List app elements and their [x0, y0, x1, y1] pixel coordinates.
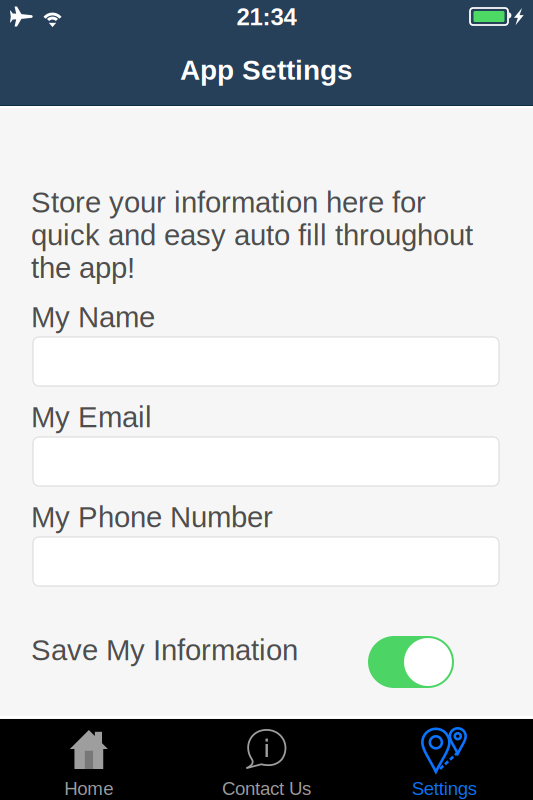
staticText: Save My Information	[31, 634, 298, 666]
button[interactable]: Home	[0, 719, 178, 800]
staticText: App Settings	[180, 54, 353, 86]
staticText: My Email	[31, 401, 152, 433]
staticText: My Name	[31, 301, 155, 333]
staticText: Store your information here for quick an…	[31, 186, 473, 284]
button[interactable]	[33, 537, 499, 586]
staticText: Contact Us	[222, 778, 311, 799]
button[interactable]: Settings	[355, 719, 533, 800]
button[interactable]: Save My Information	[368, 636, 454, 688]
staticText: Settings	[412, 778, 477, 799]
staticText: My Phone Number	[31, 501, 273, 533]
button[interactable]: Contact Us	[178, 719, 355, 800]
staticText: Home	[64, 778, 113, 799]
button[interactable]	[33, 337, 499, 386]
staticText: 21:34	[236, 4, 296, 30]
button[interactable]	[33, 437, 499, 486]
